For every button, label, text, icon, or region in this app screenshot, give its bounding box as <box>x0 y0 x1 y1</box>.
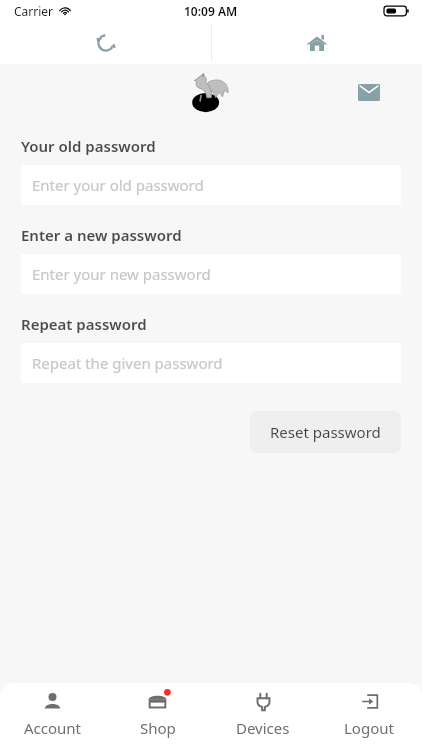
staticText: Repeat password <box>21 314 147 334</box>
staticText: Account <box>24 718 82 738</box>
button[interactable]: Home <box>211 22 422 64</box>
staticText: 10:09 AM <box>184 3 238 19</box>
staticText: Devices <box>236 718 290 738</box>
staticText: Enter your new password <box>32 264 211 284</box>
button[interactable]: Repeat the given password <box>21 343 401 383</box>
staticText: Shop <box>140 718 176 738</box>
button[interactable]: Enter your new password <box>21 254 401 294</box>
staticText: Logout <box>344 718 394 738</box>
button[interactable]: Messages <box>352 75 386 109</box>
button[interactable]: Enter your old password <box>21 165 401 205</box>
button[interactable]: Logout <box>316 690 422 750</box>
button[interactable]: Shop <box>105 690 210 750</box>
staticText: Enter a new password <box>21 225 182 245</box>
button[interactable]: Refresh <box>0 22 211 64</box>
button[interactable]: Account <box>0 690 105 750</box>
staticText: Enter your old password <box>32 175 204 195</box>
button[interactable]: Devices <box>210 690 316 750</box>
staticText: Carrier <box>14 3 54 19</box>
staticText: Repeat the given password <box>32 353 223 373</box>
staticText: Your old password <box>21 136 156 156</box>
button[interactable]: Reset password <box>250 411 401 453</box>
staticText: Reset password <box>270 422 381 442</box>
